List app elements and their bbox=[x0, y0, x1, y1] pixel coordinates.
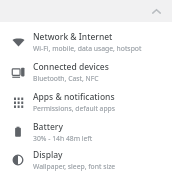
button[interactable]: Display bbox=[0, 147, 172, 172]
staticText: Wallpaper, sleep, font size bbox=[33, 162, 116, 171]
button[interactable]: Apps & notifications bbox=[0, 87, 172, 117]
staticText: Network & Internet bbox=[33, 31, 113, 43]
button[interactable]: Battery bbox=[0, 117, 172, 147]
staticText: Connected devices bbox=[33, 61, 109, 73]
button[interactable]: Network & Internet bbox=[0, 27, 172, 57]
staticText: Wi-Fi, mobile, data usage, hotspot bbox=[33, 44, 142, 53]
staticText: Display bbox=[33, 149, 63, 161]
staticText: Battery bbox=[33, 121, 63, 133]
staticText: Bluetooth, Cast, NFC bbox=[33, 74, 99, 83]
button[interactable]: Collapse bbox=[148, 3, 164, 19]
staticText: 30% - 14h 48m left bbox=[33, 134, 93, 143]
button[interactable]: Connected devices bbox=[0, 57, 172, 87]
staticText: Permissions, default apps bbox=[33, 104, 116, 113]
staticText: Apps & notifications bbox=[33, 91, 115, 103]
